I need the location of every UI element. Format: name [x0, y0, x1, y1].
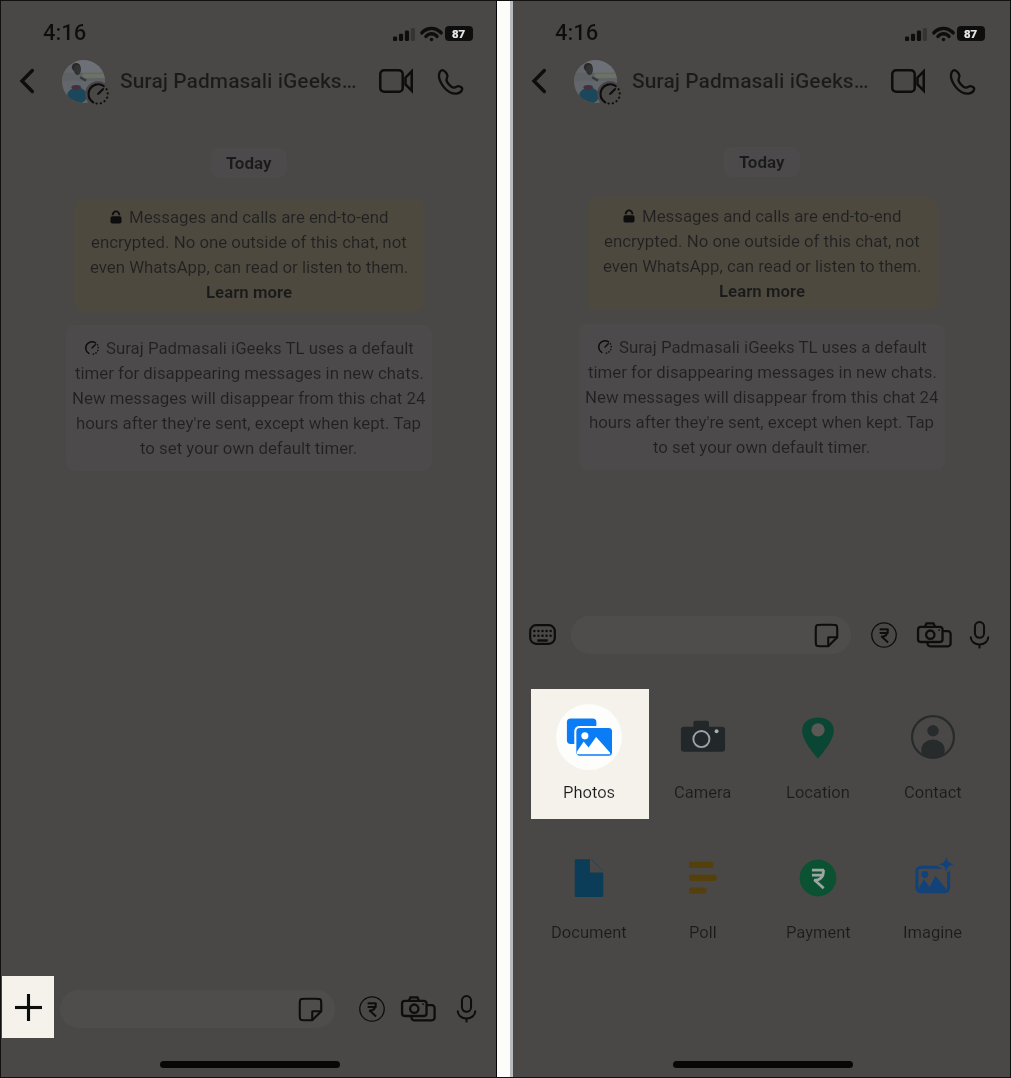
- button[interactable]: Location: [761, 689, 875, 819]
- staticText: encrypted. No one outside of this chat, …: [604, 231, 920, 251]
- button[interactable]: Suraj Padmasali iGeeks TL uses a default: [579, 324, 945, 470]
- staticText: 87: [452, 27, 466, 40]
- button[interactable]: Camera: [914, 617, 954, 653]
- staticText: Suraj Padmasali iGeeks TL uses a default: [619, 337, 927, 357]
- button[interactable]: Suraj Padmasali iGeeks TL uses a default: [66, 325, 432, 471]
- staticText: 4:16: [555, 20, 599, 46]
- button[interactable]: Attach: [2, 976, 54, 1038]
- staticText: hours after they're sent, except when ke…: [76, 413, 422, 433]
- button[interactable]: Learn more: [719, 278, 806, 304]
- staticText: Photos: [563, 783, 616, 802]
- button[interactable]: Voice call: [941, 60, 983, 102]
- staticText: 87: [964, 27, 978, 40]
- staticText: encrypted. No one outside of this chat, …: [91, 232, 407, 252]
- staticText: Document: [551, 923, 627, 942]
- staticText: Imagine: [903, 923, 963, 942]
- staticText: to set your own default timer.: [653, 437, 871, 457]
- staticText: Today: [226, 153, 272, 173]
- button[interactable]: Payment: [354, 991, 390, 1027]
- button[interactable]: Payment: [866, 617, 902, 653]
- staticText: to set your own default timer.: [140, 438, 358, 458]
- button[interactable]: Photos: [532, 689, 646, 819]
- button[interactable]: Payment: [761, 830, 875, 960]
- staticText: New messages will disappear from this ch…: [585, 387, 939, 407]
- button[interactable]: Voice call: [429, 60, 471, 102]
- button[interactable]: Camera: [646, 689, 760, 819]
- staticText: Suraj Padmasali iGeeks TL uses a default: [106, 338, 414, 358]
- button[interactable]: [571, 616, 851, 654]
- button[interactable]: Keyboard: [522, 619, 562, 649]
- staticText: timer for disappearing messages in new c…: [75, 363, 424, 383]
- button[interactable]: Video call: [887, 60, 929, 102]
- button[interactable]: Imagine: [876, 830, 990, 960]
- staticText: Today: [739, 152, 785, 172]
- staticText: New messages will disappear from this ch…: [72, 388, 426, 408]
- button[interactable]: [60, 990, 335, 1028]
- staticText: Location: [786, 783, 850, 802]
- staticText: Messages and calls are end-to-end: [129, 207, 389, 227]
- button[interactable]: Document: [532, 830, 646, 960]
- button[interactable]: Video call: [375, 60, 417, 102]
- staticText: Learn more: [719, 281, 806, 301]
- button[interactable]: Poll: [646, 830, 760, 960]
- button[interactable]: Back: [9, 63, 45, 99]
- staticText: even WhatsApp, can read or listen to the…: [603, 256, 922, 276]
- staticText: Contact: [904, 783, 962, 802]
- button[interactable]: Contact: [876, 689, 990, 819]
- staticText: Poll: [689, 923, 717, 942]
- button[interactable]: Back: [521, 63, 557, 99]
- staticText: timer for disappearing messages in new c…: [588, 362, 937, 382]
- staticText: Payment: [786, 923, 851, 942]
- button[interactable]: Voice message: [448, 991, 484, 1027]
- button[interactable]: Learn more: [206, 279, 293, 305]
- staticText: Suraj Padmasali iGeeks…: [632, 69, 869, 94]
- staticText: hours after they're sent, except when ke…: [589, 412, 935, 432]
- staticText: Suraj Padmasali iGeeks…: [120, 69, 357, 94]
- staticText: Camera: [674, 783, 732, 802]
- staticText: Messages and calls are end-to-end: [642, 206, 902, 226]
- staticText: even WhatsApp, can read or listen to the…: [90, 257, 409, 277]
- staticText: 4:16: [43, 20, 87, 46]
- staticText: Learn more: [206, 282, 293, 302]
- button[interactable]: Voice message: [961, 617, 997, 653]
- button[interactable]: Camera: [398, 991, 438, 1027]
